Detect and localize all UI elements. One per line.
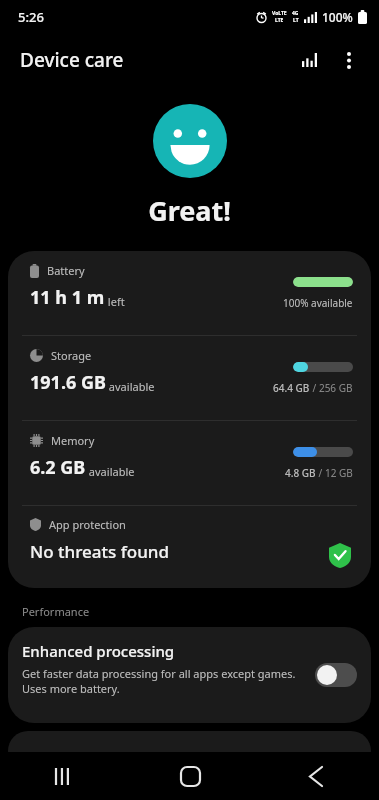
staticText: Memory [51, 433, 95, 448]
staticText: 6.2 GB [30, 455, 86, 480]
staticText: available [106, 379, 155, 394]
staticText: VoLTE [272, 10, 287, 17]
button[interactable]: Memory [8, 421, 371, 505]
staticText: / 256 GB [310, 381, 353, 395]
staticText: Great! [0, 192, 379, 229]
staticText: 64.4 GB [273, 381, 310, 395]
button[interactable]: Storage [8, 336, 371, 420]
button[interactable]: App protection [8, 506, 371, 588]
staticText: 5:26 [18, 8, 44, 26]
button[interactable]: Home [127, 752, 253, 800]
staticText: / 12 GB [316, 466, 353, 480]
button[interactable] [8, 731, 371, 771]
staticText: LT [293, 17, 299, 24]
staticText: Device care [20, 47, 124, 73]
button[interactable]: Back [253, 752, 379, 800]
button[interactable]: Usage statistics [289, 40, 329, 80]
staticText: 11 h 1 m [30, 285, 105, 310]
button[interactable]: Battery [8, 251, 371, 335]
staticText: App protection [49, 517, 126, 532]
staticText: 100% [322, 9, 353, 25]
staticText: Enhanced processing [22, 641, 175, 661]
staticText: left [105, 294, 125, 309]
staticText: Performance [22, 604, 90, 619]
staticText: 4G [292, 10, 299, 17]
button[interactable]: Enhanced processing [8, 627, 371, 723]
staticText: LTE [275, 17, 284, 24]
button[interactable]: More options [329, 40, 369, 80]
button[interactable]: Recent apps [0, 752, 127, 800]
staticText: Battery [47, 263, 85, 278]
staticText: 100% available [283, 296, 353, 310]
button[interactable]: Enhanced processing toggle [315, 663, 357, 687]
staticText: 191.6 GB [30, 370, 106, 395]
staticText: Storage [51, 348, 92, 363]
staticText: available [86, 464, 135, 479]
staticText: 4.8 GB [285, 466, 316, 480]
staticText: Get faster data processing for all apps … [22, 666, 301, 696]
staticText: No threats found [30, 540, 170, 563]
